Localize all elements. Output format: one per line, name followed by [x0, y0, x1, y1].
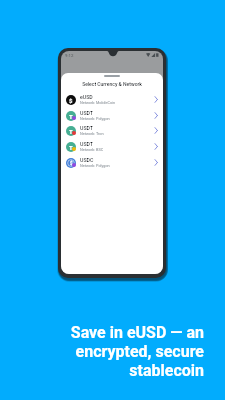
other: Select eUSD Network: MobileCoin [153, 96, 160, 103]
other: Select USDT Network: Tron [153, 127, 160, 134]
other: Select USDT Network: Polygon [153, 112, 160, 119]
button[interactable]: $ [61, 154, 163, 170]
staticText: 9:12 [65, 53, 74, 58]
staticText: USDT [80, 110, 93, 116]
staticText: Network: MobileCoin [80, 100, 116, 104]
staticText: Save in eUSD — an encrypted, secure stab… [0, 323, 204, 380]
staticText: Network: Tron [80, 131, 104, 135]
staticText: USDT [80, 125, 93, 131]
staticText: $ [70, 161, 73, 166]
button[interactable]: $ [61, 91, 163, 107]
staticText: eUSD [80, 94, 93, 100]
staticText: $ [69, 97, 73, 104]
staticText: T [69, 113, 73, 120]
staticText: T [69, 128, 73, 135]
other: Select USDT Network: BSC [153, 143, 160, 150]
staticText: Network: Polygon [80, 163, 110, 167]
staticText: T [69, 144, 73, 151]
staticText: Network: Polygon [80, 116, 110, 120]
button[interactable]: T [61, 107, 163, 123]
button[interactable]: T [61, 138, 163, 154]
staticText: USDC [80, 157, 94, 163]
staticText: USDT [80, 141, 93, 147]
staticText: Network: BSC [80, 147, 104, 151]
other: Select USDC Network: Polygon [153, 159, 160, 166]
staticText: Select Currency & Network [61, 81, 163, 87]
button[interactable]: T [61, 122, 163, 138]
